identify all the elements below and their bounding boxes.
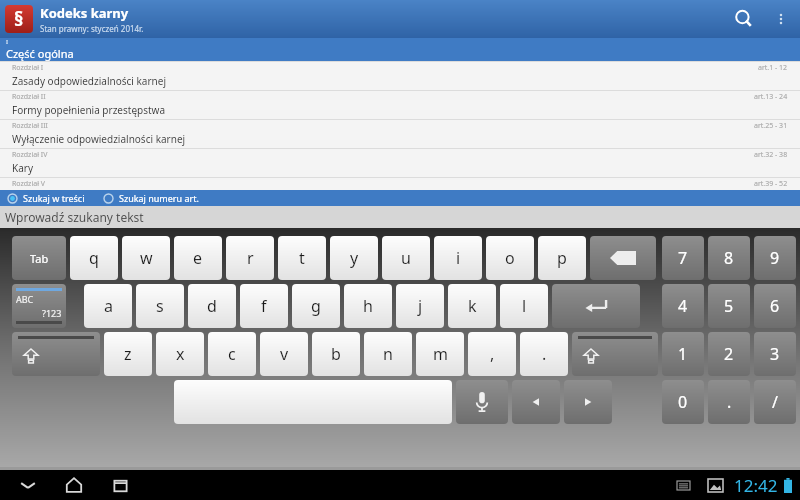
button[interactable]: Right	[564, 380, 612, 424]
button[interactable]: 9	[754, 236, 796, 280]
staticText: 6	[770, 295, 780, 317]
staticText: art.25 - 31	[754, 121, 788, 131]
staticText: §	[14, 6, 24, 32]
button[interactable]: Backspace	[590, 236, 656, 280]
staticText: d	[207, 295, 217, 317]
button[interactable]: z	[104, 332, 152, 376]
button[interactable]: Screenshot	[702, 472, 728, 498]
button[interactable]: Home	[58, 470, 90, 500]
staticText: e	[193, 247, 203, 269]
button[interactable]: o	[486, 236, 534, 280]
button[interactable]: Szukaj numeru art.	[100, 192, 202, 204]
staticText: I	[6, 38, 9, 46]
button[interactable]: 1	[662, 332, 704, 376]
button[interactable]: Back	[12, 470, 44, 500]
staticText: u	[401, 247, 411, 269]
button[interactable]: 5	[708, 284, 750, 328]
button[interactable]: b	[312, 332, 360, 376]
button[interactable]: .	[708, 380, 750, 424]
button[interactable]: c	[208, 332, 256, 376]
button[interactable]: k	[448, 284, 496, 328]
button[interactable]: u	[382, 236, 430, 280]
button[interactable]: ,	[468, 332, 516, 376]
button[interactable]: e	[174, 236, 222, 280]
button[interactable]: Wprowadź szukany tekst	[0, 206, 800, 228]
button[interactable]: s	[136, 284, 184, 328]
staticText: 0	[678, 391, 688, 413]
button[interactable]: d	[188, 284, 236, 328]
button[interactable]: /	[754, 380, 796, 424]
button[interactable]: App icon	[5, 5, 33, 33]
staticText: Rozdział III	[12, 121, 48, 131]
staticText: x	[176, 343, 185, 365]
button[interactable]: i	[434, 236, 482, 280]
staticText: Szukaj numeru art.	[119, 192, 199, 204]
button[interactable]: 3	[754, 332, 796, 376]
button[interactable]: Rozdział III	[0, 119, 800, 148]
button[interactable]: 2	[708, 332, 750, 376]
button[interactable]: Voice input	[456, 380, 508, 424]
staticText: l	[522, 295, 527, 317]
button[interactable]: Szukaj w treści	[4, 192, 88, 204]
button[interactable]: w	[122, 236, 170, 280]
staticText: m	[433, 343, 448, 365]
button[interactable]: Tab	[12, 236, 66, 280]
staticText: art.13 - 24	[754, 92, 788, 102]
button[interactable]: j	[396, 284, 444, 328]
staticText: r	[247, 247, 254, 269]
button[interactable]: l	[500, 284, 548, 328]
button[interactable]: 8	[708, 236, 750, 280]
button[interactable]: v	[260, 332, 308, 376]
button[interactable]: Rozdział I	[0, 61, 800, 90]
staticText: ?123	[42, 307, 62, 319]
staticText: Szukaj w treści	[23, 192, 85, 204]
button[interactable]: Rozdział II	[0, 90, 800, 119]
staticText: Wyłączenie odpowiedzialności karnej	[12, 132, 186, 146]
staticText: Rozdział V	[12, 179, 45, 189]
staticText: 8	[724, 247, 734, 269]
button[interactable]: p	[538, 236, 586, 280]
button[interactable]: Shift	[12, 332, 100, 376]
staticText: Stan prawny: styczeń 2014r.	[40, 23, 144, 34]
button[interactable]: Recent apps	[104, 470, 136, 500]
button[interactable]: r	[226, 236, 274, 280]
button[interactable]: Rozdział V	[0, 177, 800, 190]
button[interactable]: Shift	[572, 332, 658, 376]
staticText: Część ogólna	[6, 46, 74, 61]
staticText: Zasady odpowiedzialności karnej	[12, 74, 166, 88]
button[interactable]: t	[278, 236, 326, 280]
staticText: 3	[770, 343, 780, 365]
button[interactable]: .	[520, 332, 568, 376]
button[interactable]: Keyboard	[670, 472, 696, 498]
staticText: v	[280, 343, 289, 365]
staticText: 7	[678, 247, 688, 269]
button[interactable]: a	[84, 284, 132, 328]
button[interactable]: Space	[174, 380, 452, 424]
button[interactable]: n	[364, 332, 412, 376]
button[interactable]: 7	[662, 236, 704, 280]
button[interactable]: 4	[662, 284, 704, 328]
button[interactable]: I	[0, 38, 800, 61]
button[interactable]: 6	[754, 284, 796, 328]
staticText: a	[104, 295, 113, 317]
button[interactable]: More options	[766, 4, 796, 34]
staticText: h	[363, 295, 373, 317]
button[interactable]: Search	[722, 0, 766, 38]
button[interactable]: Switch to symbols	[12, 284, 66, 328]
button[interactable]: y	[330, 236, 378, 280]
button[interactable]: Enter	[552, 284, 640, 328]
staticText: 5	[724, 295, 734, 317]
staticText: 4	[678, 295, 688, 317]
button[interactable]: g	[292, 284, 340, 328]
button[interactable]: f	[240, 284, 288, 328]
button[interactable]: q	[70, 236, 118, 280]
button[interactable]: m	[416, 332, 464, 376]
staticText: .	[542, 343, 547, 365]
button[interactable]: h	[344, 284, 392, 328]
button[interactable]: 0	[662, 380, 704, 424]
button[interactable]: Left	[512, 380, 560, 424]
button[interactable]: Rozdział IV	[0, 148, 800, 177]
staticText: c	[228, 343, 236, 365]
staticText: j	[418, 295, 423, 317]
button[interactable]: x	[156, 332, 204, 376]
